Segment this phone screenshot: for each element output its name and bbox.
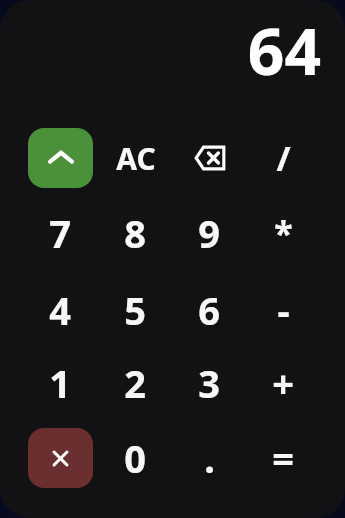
button[interactable]: 8 xyxy=(98,196,172,270)
button[interactable]: + xyxy=(246,346,320,420)
button[interactable]: 6 xyxy=(172,273,246,347)
button[interactable]: / xyxy=(246,121,320,195)
staticText: * xyxy=(274,210,293,256)
staticText: - xyxy=(277,284,290,336)
staticText: 4 xyxy=(49,284,71,336)
staticText: 0 xyxy=(124,432,146,484)
button[interactable]: 9 xyxy=(172,196,246,270)
button[interactable]: 7 xyxy=(23,196,97,270)
button[interactable]: AC xyxy=(99,121,173,195)
staticText: . xyxy=(204,432,215,484)
staticText: 6 xyxy=(198,284,220,336)
button[interactable]: 0 xyxy=(98,421,172,495)
staticText: + xyxy=(272,357,294,409)
button[interactable]: Backspace xyxy=(172,121,246,195)
staticText: 2 xyxy=(124,357,146,409)
button[interactable]: Show history xyxy=(28,128,93,188)
staticText: 8 xyxy=(124,207,146,259)
staticText: 1 xyxy=(49,357,71,409)
staticText: 7 xyxy=(49,207,71,259)
button[interactable]: = xyxy=(246,421,320,495)
staticText: = xyxy=(272,432,294,484)
staticText: 9 xyxy=(198,207,220,259)
button[interactable]: Close xyxy=(28,428,93,488)
button[interactable]: 5 xyxy=(98,273,172,347)
button[interactable]: * xyxy=(246,196,320,270)
staticText: / xyxy=(276,135,291,181)
staticText: 5 xyxy=(124,284,146,336)
button[interactable]: 4 xyxy=(23,273,97,347)
staticText: 64 xyxy=(247,7,321,94)
button[interactable]: 64 xyxy=(0,0,345,112)
button[interactable]: 2 xyxy=(98,346,172,420)
button[interactable]: 1 xyxy=(23,346,97,420)
staticText: 3 xyxy=(198,357,220,409)
staticText: AC xyxy=(116,138,156,179)
button[interactable]: . xyxy=(172,421,246,495)
button[interactable]: - xyxy=(246,273,320,347)
button[interactable]: 3 xyxy=(172,346,246,420)
